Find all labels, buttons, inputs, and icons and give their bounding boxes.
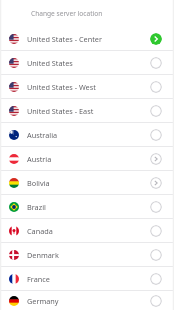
button[interactable]: Select server	[150, 225, 162, 237]
button[interactable]: Denmark	[0, 243, 174, 267]
button[interactable]: United States - East	[0, 99, 174, 123]
button[interactable]: United States - West	[0, 75, 174, 99]
staticText: Germany	[27, 296, 150, 306]
staticText: United States	[27, 58, 150, 68]
button[interactable]: France	[0, 267, 174, 291]
staticText: France	[27, 274, 150, 284]
button[interactable]: United States	[0, 51, 174, 75]
button[interactable]: Select server	[150, 249, 162, 261]
staticText: Canada	[27, 226, 150, 236]
staticText: Brazil	[27, 202, 150, 212]
button[interactable]: Bolivia	[0, 171, 174, 195]
button[interactable]: Show sub-locations	[150, 153, 162, 165]
staticText: Austria	[27, 154, 150, 164]
staticText: Denmark	[27, 250, 150, 260]
button[interactable]: Austria	[0, 147, 174, 171]
button[interactable]: Canada	[0, 219, 174, 243]
button[interactable]: Select server	[150, 81, 162, 93]
button[interactable]: Select server	[150, 129, 162, 141]
staticText: Australia	[27, 130, 150, 140]
button[interactable]: Select server	[150, 57, 162, 69]
button[interactable]: Select server	[150, 105, 162, 117]
button[interactable]: Selected server	[150, 33, 162, 45]
staticText: United States - East	[27, 106, 150, 116]
staticText: United States - Center	[27, 34, 150, 44]
staticText: Change server location	[31, 9, 103, 18]
staticText: Bolivia	[27, 178, 150, 188]
staticText: United States - West	[27, 82, 150, 92]
button[interactable]: Show sub-locations	[150, 177, 162, 189]
button[interactable]: Brazil	[0, 195, 174, 219]
button[interactable]: Select server	[150, 201, 162, 213]
button[interactable]: Select server	[150, 273, 162, 285]
button[interactable]: Australia	[0, 123, 174, 147]
button[interactable]: Select server	[150, 295, 162, 307]
button[interactable]: Germany	[0, 291, 174, 310]
button[interactable]: United States - Center	[0, 27, 174, 51]
